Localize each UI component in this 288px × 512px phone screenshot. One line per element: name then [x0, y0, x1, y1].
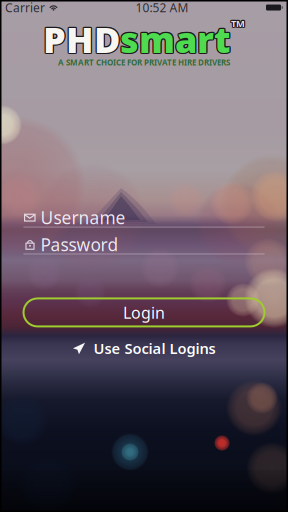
staticText: smart	[120, 15, 231, 63]
staticText: smart	[120, 16, 231, 64]
staticText: TM	[231, 17, 245, 29]
staticText: smart	[121, 14, 232, 62]
staticText: TM	[232, 16, 246, 29]
staticText: Login	[123, 302, 165, 323]
staticText: smart	[121, 16, 232, 64]
button[interactable]: Login	[23, 298, 264, 326]
staticText: smart	[119, 16, 230, 64]
staticText: TM	[230, 17, 244, 29]
staticText: smart	[120, 14, 231, 62]
staticText: Password	[40, 233, 118, 256]
staticText: TM	[231, 18, 245, 31]
staticText: smart	[121, 15, 232, 63]
staticText: Carrier	[5, 0, 45, 15]
staticText: PHD	[42, 16, 119, 64]
staticText: smart	[119, 14, 230, 62]
staticText: TM	[232, 17, 246, 29]
staticText: TM	[231, 16, 245, 28]
staticText: PHD	[44, 15, 121, 63]
staticText: PHD	[42, 15, 119, 63]
button[interactable]: Username	[23, 209, 264, 227]
staticText: TM	[230, 16, 244, 29]
staticText: TM	[230, 18, 244, 30]
staticText: PHD	[43, 16, 120, 64]
button[interactable]: Password	[23, 235, 264, 254]
staticText: A SMART CHOICE FOR PRIVATE HIRE DRIVERS	[58, 57, 230, 68]
staticText: TM	[232, 18, 246, 30]
staticText: 10:52 AM	[135, 0, 188, 15]
staticText: smart	[119, 15, 230, 63]
staticText: PHD	[44, 14, 121, 62]
staticText: Username	[40, 206, 125, 229]
button[interactable]: Use Social Logins	[58, 337, 229, 359]
staticText: PHD	[43, 15, 120, 63]
staticText: Use Social Logins	[93, 339, 215, 358]
staticText: PHD	[42, 14, 119, 62]
staticText: PHD	[44, 16, 121, 64]
staticText: PHD	[43, 14, 120, 62]
